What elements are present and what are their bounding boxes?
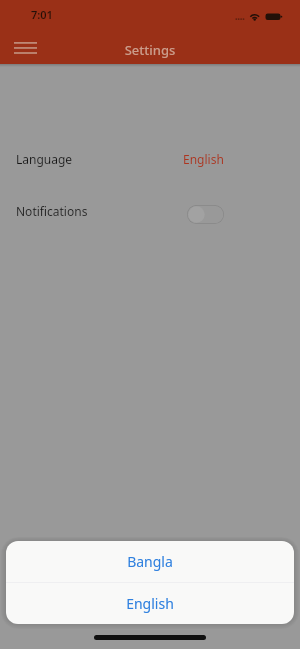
staticText: English — [126, 594, 174, 613]
staticText: 7:01 — [31, 7, 53, 22]
button[interactable]: Language — [0, 137, 300, 181]
button[interactable]: Notifications toggle — [187, 205, 224, 224]
staticText: Settings — [0, 41, 300, 59]
staticText: English — [183, 151, 224, 167]
staticText: Notifications — [16, 203, 88, 219]
button[interactable]: Bangla — [6, 541, 294, 582]
staticText: Language — [16, 151, 73, 167]
staticText: Bangla — [127, 552, 173, 571]
button[interactable]: English — [6, 583, 294, 624]
button[interactable]: Menu — [3, 31, 48, 64]
button[interactable]: Notifications — [0, 189, 300, 233]
